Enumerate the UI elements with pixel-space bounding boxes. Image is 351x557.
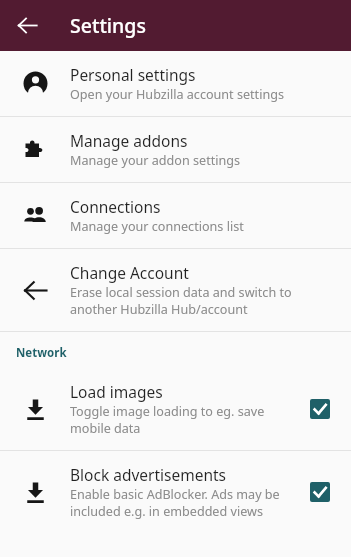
staticText: Manage your connections list [70,218,244,235]
button[interactable]: Personal settings [0,51,351,116]
staticText: Block advertisements [70,464,227,485]
staticText: Network [16,345,67,361]
button[interactable]: Load images [0,368,351,450]
button[interactable]: Toggle Block advertisements [303,475,337,509]
staticText: Personal settings [70,64,196,85]
staticText: Manage addons [70,130,188,151]
staticText: Settings [70,12,146,39]
button[interactable]: Change Account [0,249,351,331]
button[interactable]: Back [9,7,46,44]
button[interactable]: Connections [0,183,351,248]
staticText: Open your Hubzilla account settings [70,86,284,103]
staticText: Toggle image loading to eg. save mobile … [70,403,295,437]
staticText: Enable basic AdBlocker. Ads may be inclu… [70,486,295,520]
staticText: Load images [70,381,163,402]
staticText: Change Account [70,262,189,283]
button[interactable]: Block advertisements [0,451,351,533]
staticText: Erase local session data and switch to a… [70,284,335,318]
button[interactable]: Manage addons [0,117,351,182]
button[interactable]: Toggle Load images [303,392,337,426]
staticText: Manage your addon settings [70,152,241,169]
staticText: Connections [70,196,161,217]
